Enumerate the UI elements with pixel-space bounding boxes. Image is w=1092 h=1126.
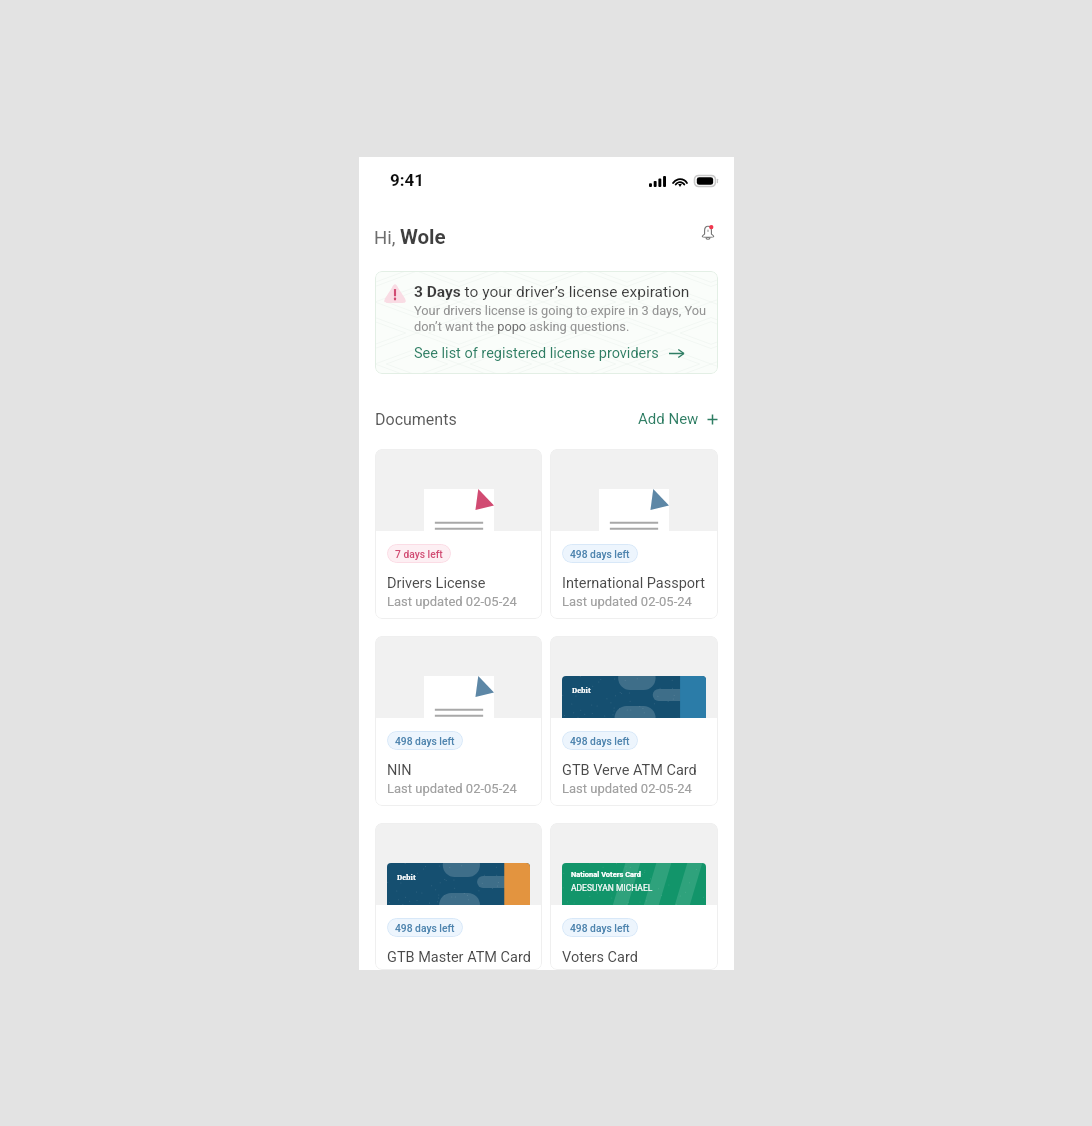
staticText: Documents <box>375 410 457 429</box>
button[interactable]: 498 days left <box>375 636 542 806</box>
staticText: NIN <box>387 762 412 779</box>
staticText: Last updated 02-05-24 <box>562 781 692 796</box>
staticText: 498 days left <box>570 922 630 934</box>
staticText: Your drivers license is going to expire … <box>414 303 710 334</box>
button[interactable]: 7 days left <box>375 449 542 619</box>
staticText: National Voters Card <box>571 870 641 879</box>
staticText: Debit <box>397 873 416 882</box>
staticText: Last updated 02-05-24 <box>387 781 517 796</box>
staticText: See list of registered license providers <box>414 345 659 362</box>
staticText: 3 Days to your driver’s license expirati… <box>414 283 690 301</box>
staticText: 498 days left <box>395 922 455 934</box>
staticText: ADESUYAN MICHAEL <box>571 883 653 893</box>
staticText: 498 days left <box>570 735 630 747</box>
button[interactable]: 498 days left <box>550 449 718 619</box>
staticText: 498 days left <box>395 735 455 747</box>
staticText: Drivers License <box>387 575 486 592</box>
staticText: 7 days left <box>395 548 443 560</box>
button[interactable]: Debit <box>375 823 542 970</box>
staticText: 9:41 <box>390 170 425 190</box>
button[interactable]: Debit <box>550 636 718 806</box>
staticText: International Passport <box>562 575 706 592</box>
button[interactable]: Notifications <box>693 217 723 247</box>
staticText: Last updated 02-05-24 <box>387 594 517 609</box>
staticText: GTB Verve ATM Card <box>562 762 697 779</box>
button[interactable]: National Voters Card <box>550 823 718 970</box>
staticText: Last updated 02-05-24 <box>562 594 692 609</box>
staticText: GTB Master ATM Card <box>387 949 531 966</box>
staticText: Last updated 02-05-24 <box>387 968 517 970</box>
button[interactable]: 3 Days to your driver’s license expirati… <box>375 271 718 374</box>
staticText: Add New <box>638 410 699 428</box>
staticText: Voters Card <box>562 949 638 966</box>
staticText: 498 days left <box>570 548 630 560</box>
staticText: Hi, Wole <box>374 225 446 249</box>
staticText: Last updated 02-05-24 <box>562 968 692 970</box>
button[interactable]: Add New <box>638 410 718 429</box>
staticText: Debit <box>572 686 591 695</box>
